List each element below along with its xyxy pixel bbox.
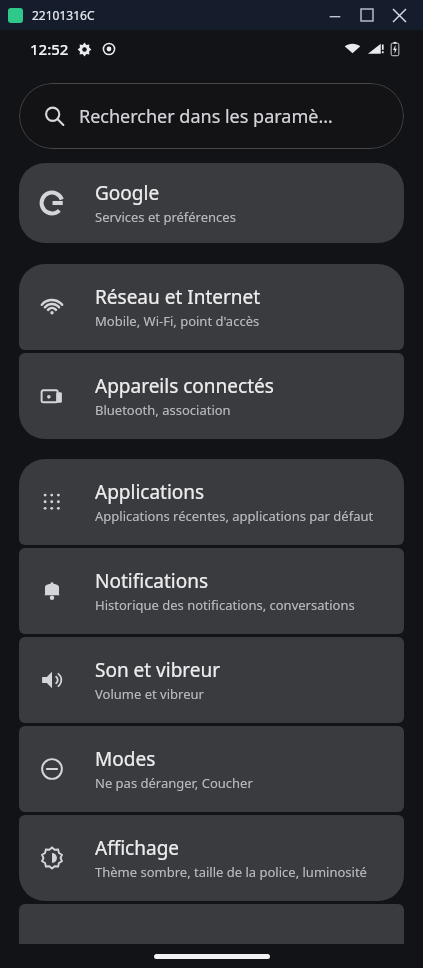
staticText: Appareils connectés <box>95 373 274 399</box>
staticText: Volume et vibreur <box>95 685 204 703</box>
staticText: 12:52 <box>30 39 69 59</box>
staticText: Réseau et Internet <box>95 284 261 310</box>
button[interactable]: Close <box>383 0 415 30</box>
button[interactable]: Notifications <box>19 548 404 634</box>
staticText: Modes <box>95 746 156 772</box>
staticText: Applications récentes, applications par … <box>95 507 374 525</box>
staticText: Google <box>95 180 160 206</box>
button[interactable]: Modes <box>19 726 404 812</box>
staticText: Notifications <box>95 568 209 594</box>
button[interactable]: Maximize <box>351 0 383 30</box>
staticText: Bluetooth, association <box>95 401 231 419</box>
staticText: Applications <box>95 479 205 505</box>
staticText: 22101316C <box>32 7 95 23</box>
staticText: Ne pas déranger, Coucher <box>95 774 253 792</box>
staticText: Thème sombre, taille de la police, lumin… <box>95 863 367 881</box>
button[interactable]: Affichage <box>19 815 404 901</box>
staticText: Services et préférences <box>95 208 236 226</box>
button[interactable]: Réseau et Internet <box>19 264 404 350</box>
button[interactable]: Rechercher dans les paramè… <box>19 83 404 149</box>
staticText: Son et vibreur <box>95 657 221 683</box>
button[interactable]: Google <box>19 163 404 243</box>
button[interactable]: Applications <box>19 459 404 545</box>
staticText: Mobile, Wi-Fi, point d'accès <box>95 312 260 330</box>
staticText: Historique des notifications, conversati… <box>95 596 355 614</box>
button[interactable]: Son et vibreur <box>19 637 404 723</box>
staticText: Rechercher dans les paramè… <box>79 104 333 129</box>
button[interactable]: Appareils connectés <box>19 353 404 439</box>
button[interactable]: Minimize <box>319 0 351 30</box>
staticText: Affichage <box>95 835 180 861</box>
